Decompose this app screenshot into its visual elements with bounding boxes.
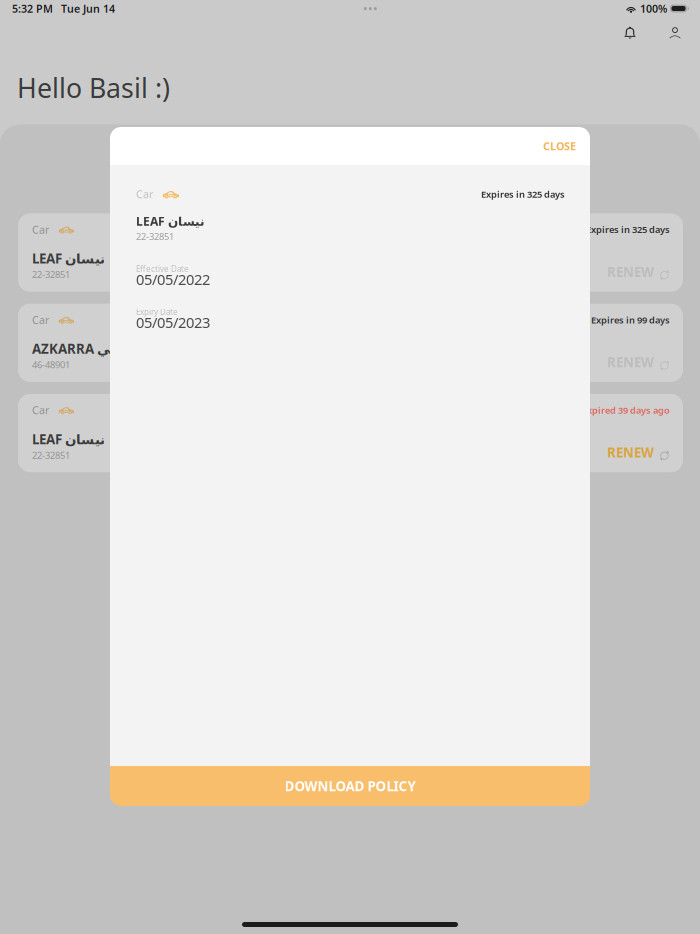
staticText: 05/05/2022 — [136, 269, 210, 289]
staticText: LEAF نيسان — [136, 213, 205, 229]
staticText: 22-32851 — [32, 268, 70, 281]
staticText: Car — [32, 313, 49, 327]
staticText: 100% — [640, 1, 667, 16]
staticText: CLOSE — [543, 139, 576, 153]
staticText: Car — [32, 222, 49, 237]
button[interactable]: DOWNLOAD POLICY — [110, 766, 590, 806]
staticText: Expires in 325 days — [481, 188, 565, 200]
staticText: 46-48901 — [32, 359, 70, 371]
staticText: Expired 39 days ago — [582, 404, 670, 416]
button[interactable]: Notifications — [613, 20, 647, 46]
button[interactable]: Account — [658, 20, 692, 46]
staticText: ••• — [363, 0, 378, 16]
staticText: Hello Basil :) — [17, 70, 170, 105]
staticText: AZKARRA جلي — [32, 340, 125, 357]
staticText: RENEW — [607, 263, 654, 281]
staticText: LEAF نيسان — [32, 430, 105, 448]
staticText: 05/05/2023 — [136, 312, 210, 332]
staticText: RENEW — [607, 443, 654, 461]
staticText: 5:32 PM — [12, 1, 53, 16]
button[interactable]: CLOSE — [523, 126, 590, 166]
staticText: Effective Date — [136, 263, 189, 274]
staticText: LEAF نيسان — [32, 250, 105, 267]
staticText: Car — [32, 403, 49, 417]
staticText: Tue Jun 14 — [61, 1, 115, 16]
staticText: Expires in 99 days — [591, 314, 670, 326]
staticText: Expires in 325 days — [586, 223, 670, 236]
staticText: Expiry Date — [136, 306, 178, 317]
staticText: 22-32851 — [136, 230, 174, 242]
staticText: RENEW — [607, 353, 654, 371]
staticText: 22-32851 — [32, 449, 70, 461]
staticText: DOWNLOAD POLICY — [284, 777, 415, 795]
staticText: Car — [136, 187, 153, 201]
